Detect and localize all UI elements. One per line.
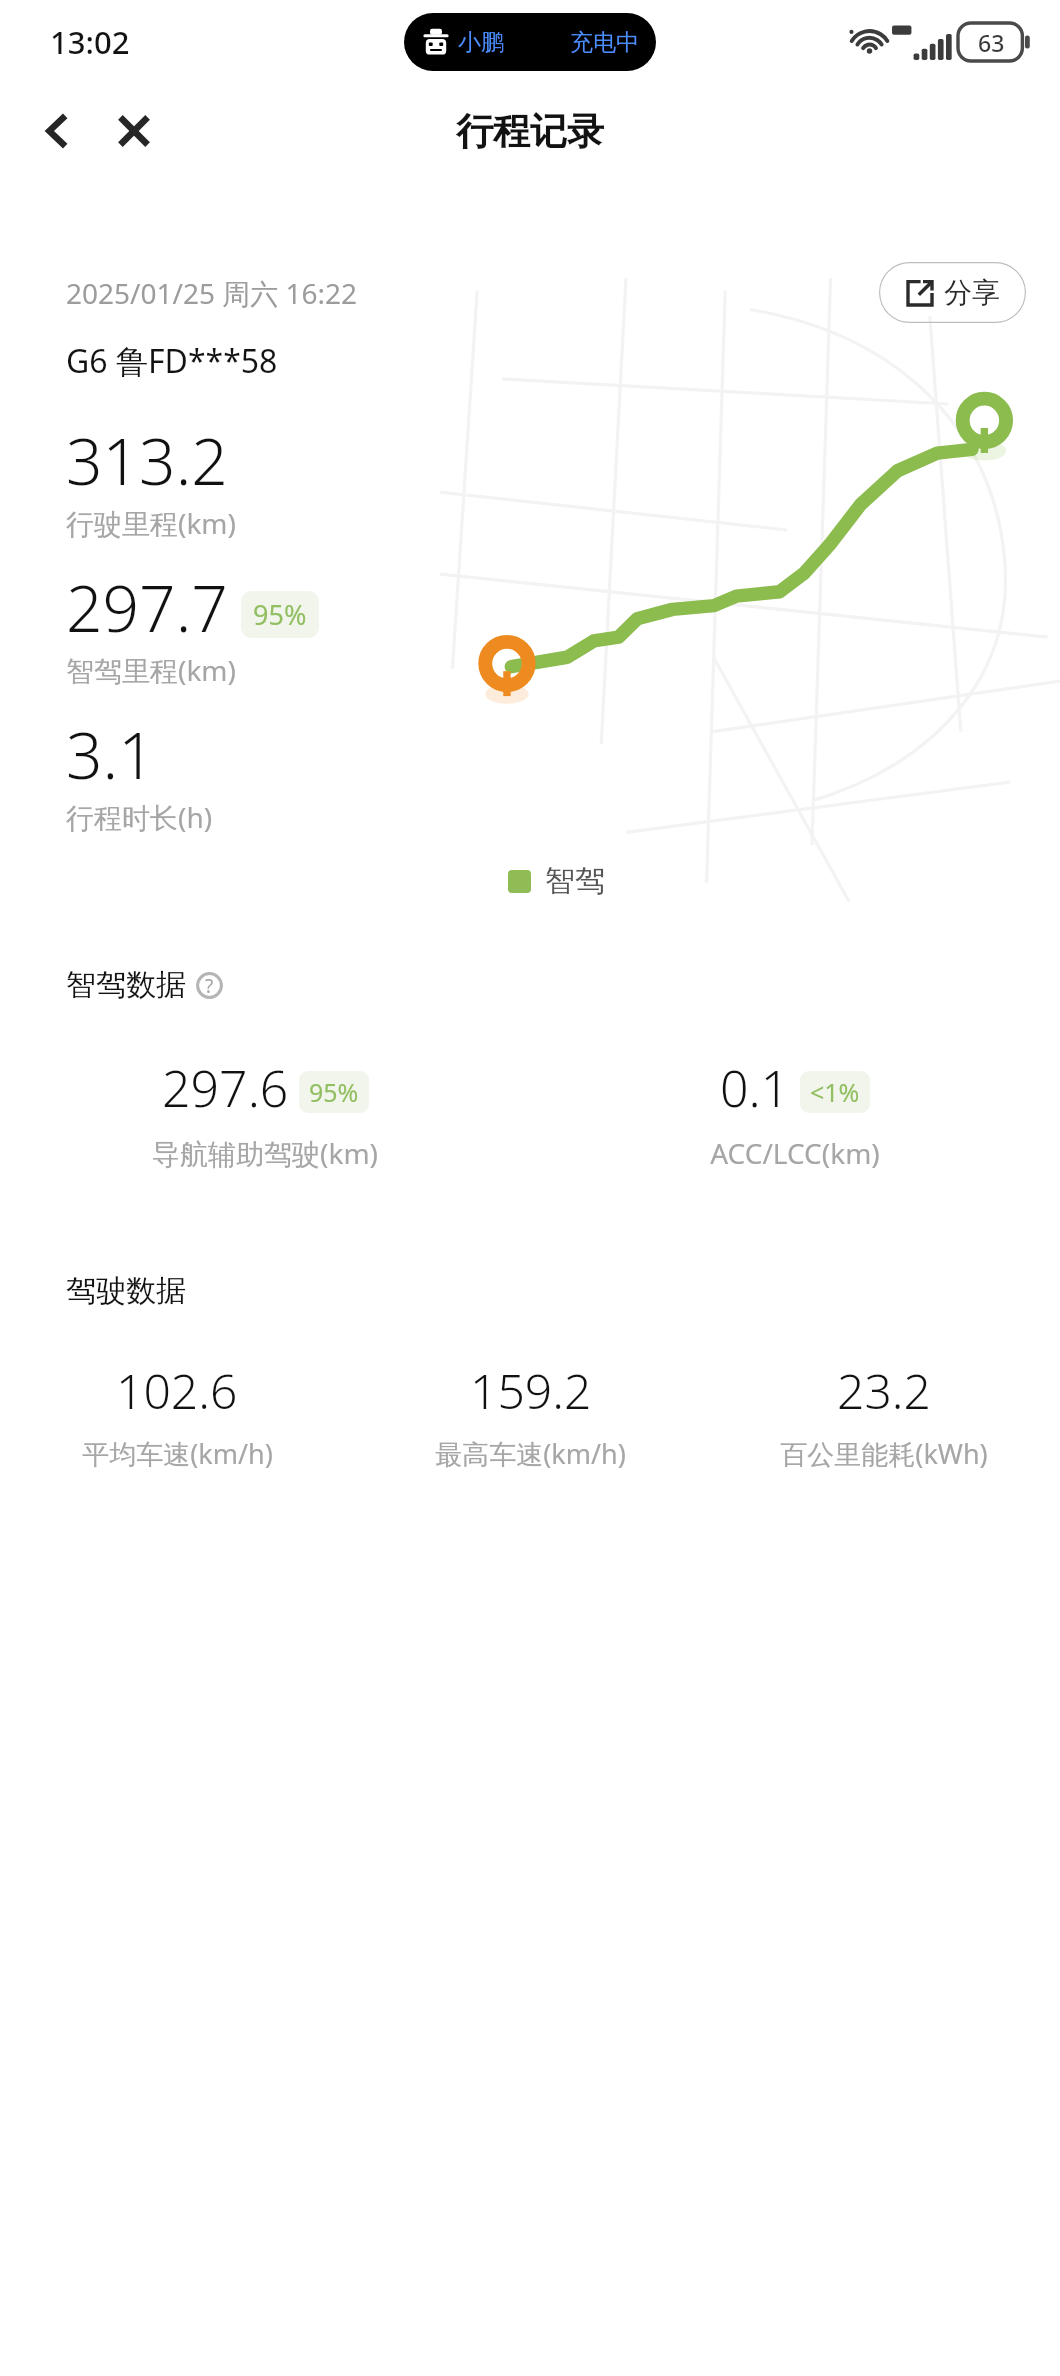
staticText: G6 鲁FD***58 bbox=[66, 339, 278, 383]
staticText: 智驾里程(km) bbox=[66, 651, 236, 689]
staticText: 智驾 bbox=[545, 862, 605, 900]
staticText: 0.1 bbox=[720, 1054, 790, 1122]
staticText: 行程时长(h) bbox=[66, 798, 213, 836]
staticText: 平均车速(km/h) bbox=[82, 1435, 273, 1472]
staticText: 最高车速(km/h) bbox=[435, 1435, 626, 1472]
button[interactable]: XPeng charging bbox=[404, 13, 656, 71]
staticText: 2025/01/25 周六 16:22 bbox=[66, 274, 358, 312]
button[interactable]: Close bbox=[100, 97, 168, 165]
staticText: 行程记录 bbox=[456, 108, 604, 155]
staticText: ? bbox=[205, 973, 214, 999]
button[interactable]: Back bbox=[24, 97, 92, 165]
staticText: 297.6 bbox=[162, 1054, 289, 1122]
staticText: 102.6 bbox=[116, 1358, 238, 1423]
staticText: 导航辅助驾驶(km) bbox=[152, 1134, 378, 1172]
staticText: 驾驶数据 bbox=[66, 1272, 186, 1310]
staticText: 297.7 bbox=[66, 564, 228, 651]
staticText: 313.2 bbox=[66, 417, 228, 504]
staticText: <1% bbox=[810, 1075, 860, 1109]
staticText: 智驾数据 bbox=[66, 966, 186, 1004]
staticText: ACC/LCC(km) bbox=[710, 1134, 880, 1172]
staticText: 13:02 bbox=[50, 21, 130, 63]
button[interactable]: 智驾数据 bbox=[66, 966, 223, 1004]
staticText: 23.2 bbox=[837, 1358, 931, 1423]
staticText: 63 bbox=[978, 27, 1005, 58]
staticText: 95% bbox=[253, 596, 307, 633]
button[interactable]: 分享 bbox=[879, 262, 1026, 323]
staticText: 充电中 bbox=[570, 28, 639, 57]
staticText: 行驶里程(km) bbox=[66, 504, 236, 542]
staticText: 小鹏 bbox=[458, 28, 504, 57]
staticText: 95% bbox=[309, 1075, 359, 1109]
staticText: 3.1 bbox=[66, 711, 155, 798]
staticText: 159.2 bbox=[470, 1358, 592, 1423]
staticText: 分享 bbox=[944, 275, 1000, 310]
staticText: 百公里能耗(kWh) bbox=[780, 1435, 988, 1472]
